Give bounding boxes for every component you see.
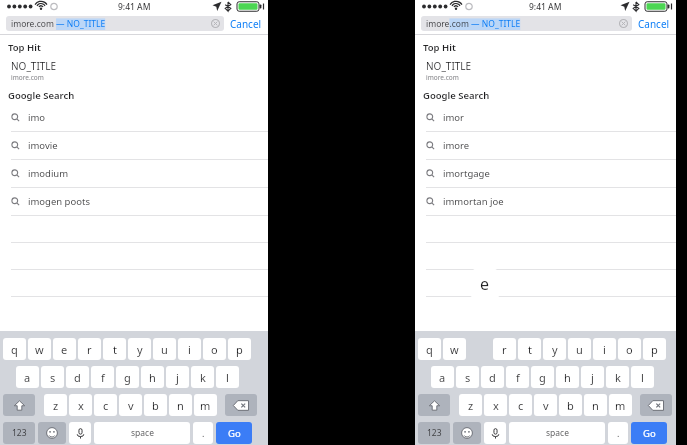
- button[interactable]: imor: [415, 104, 676, 131]
- button[interactable]: l: [631, 366, 654, 388]
- button[interactable]: r: [493, 338, 516, 360]
- staticText: 123: [12, 427, 27, 439]
- staticText: f: [516, 370, 520, 385]
- staticText: f: [101, 370, 105, 385]
- button[interactable]: j: [166, 366, 189, 388]
- staticText: Google Search: [8, 89, 75, 102]
- button[interactable]: imogen poots: [0, 188, 268, 215]
- button[interactable]: i: [178, 338, 201, 360]
- staticText: r: [502, 342, 507, 357]
- button[interactable]: q: [3, 338, 26, 360]
- staticText: imore: [443, 139, 470, 152]
- button[interactable]: NO_TITLE: [0, 59, 268, 82]
- button[interactable]: s: [41, 366, 64, 388]
- button[interactable]: imo: [0, 104, 268, 131]
- button[interactable]: Cancel: [638, 17, 670, 31]
- button[interactable]: y: [543, 338, 566, 360]
- button[interactable]: Go: [631, 422, 667, 444]
- button[interactable]: imodium: [0, 160, 268, 187]
- button[interactable]: n: [584, 394, 607, 416]
- button[interactable]: z: [459, 394, 482, 416]
- button[interactable]: u: [153, 338, 176, 360]
- button[interactable]: y: [128, 338, 151, 360]
- button[interactable]: v: [534, 394, 557, 416]
- staticText: imovie: [28, 139, 58, 152]
- staticText: Go: [643, 427, 656, 440]
- button[interactable]: Dictate: [484, 422, 506, 444]
- button[interactable]: o: [203, 338, 226, 360]
- staticText: imore.com — NO_TITLE: [11, 18, 106, 30]
- button[interactable]: x: [484, 394, 507, 416]
- button[interactable]: Shift: [3, 394, 35, 416]
- button[interactable]: w: [28, 338, 51, 360]
- button[interactable]: Go: [216, 422, 252, 444]
- button[interactable]: Delete: [225, 394, 257, 416]
- staticText: imore.com: [11, 73, 44, 82]
- button[interactable]: w: [443, 338, 466, 360]
- button[interactable]: c: [94, 394, 117, 416]
- staticText: imo: [28, 111, 46, 124]
- button[interactable]: .: [193, 422, 213, 444]
- staticText: n: [592, 398, 599, 413]
- button[interactable]: r: [78, 338, 101, 360]
- button[interactable]: imore.com — NO_TITLE: [421, 16, 632, 31]
- button[interactable]: d: [66, 366, 89, 388]
- button[interactable]: imore.com — NO_TITLE: [6, 16, 224, 31]
- button[interactable]: o: [618, 338, 641, 360]
- button[interactable]: h: [556, 366, 579, 388]
- button[interactable]: n: [169, 394, 192, 416]
- button[interactable]: Delete: [640, 394, 672, 416]
- button[interactable]: g: [531, 366, 554, 388]
- staticText: s: [50, 370, 56, 385]
- button[interactable]: Emoji: [453, 422, 481, 444]
- button[interactable]: c: [509, 394, 532, 416]
- button[interactable]: space: [509, 422, 605, 444]
- button[interactable]: p: [643, 338, 666, 360]
- button[interactable]: t: [518, 338, 541, 360]
- staticText: x: [78, 398, 84, 413]
- button[interactable]: imore: [415, 132, 676, 159]
- button[interactable]: m: [609, 394, 632, 416]
- button[interactable]: e: [53, 338, 76, 360]
- button[interactable]: i: [593, 338, 616, 360]
- button[interactable]: z: [44, 394, 67, 416]
- button[interactable]: imortgage: [415, 160, 676, 187]
- button[interactable]: Cancel: [230, 17, 262, 31]
- button[interactable]: g: [116, 366, 139, 388]
- button[interactable]: k: [191, 366, 214, 388]
- button[interactable]: l: [216, 366, 239, 388]
- button[interactable]: immortan joe: [415, 188, 676, 215]
- button[interactable]: NO_TITLE: [415, 59, 676, 82]
- button[interactable]: u: [568, 338, 591, 360]
- button[interactable]: 123: [418, 422, 450, 444]
- button[interactable]: imovie: [0, 132, 268, 159]
- staticText: w: [450, 342, 459, 357]
- button[interactable]: a: [431, 366, 454, 388]
- button[interactable]: f: [506, 366, 529, 388]
- button[interactable]: b: [144, 394, 167, 416]
- button[interactable]: x: [69, 394, 92, 416]
- button[interactable]: h: [141, 366, 164, 388]
- button[interactable]: v: [119, 394, 142, 416]
- button[interactable]: 123: [3, 422, 35, 444]
- button[interactable]: t: [103, 338, 126, 360]
- staticText: immortan joe: [443, 195, 504, 208]
- button[interactable]: Clear text: [211, 19, 220, 28]
- button[interactable]: Clear text: [619, 19, 628, 28]
- button[interactable]: .: [608, 422, 628, 444]
- button[interactable]: Emoji: [38, 422, 66, 444]
- button[interactable]: q: [418, 338, 441, 360]
- button[interactable]: s: [456, 366, 479, 388]
- button[interactable]: space: [94, 422, 190, 444]
- button[interactable]: k: [606, 366, 629, 388]
- button[interactable]: m: [194, 394, 217, 416]
- button[interactable]: Shift: [418, 394, 450, 416]
- button[interactable]: b: [559, 394, 582, 416]
- button[interactable]: j: [581, 366, 604, 388]
- button[interactable]: d: [481, 366, 504, 388]
- button[interactable]: f: [91, 366, 114, 388]
- button[interactable]: p: [228, 338, 251, 360]
- button[interactable]: a: [16, 366, 39, 388]
- button[interactable]: Dictate: [69, 422, 91, 444]
